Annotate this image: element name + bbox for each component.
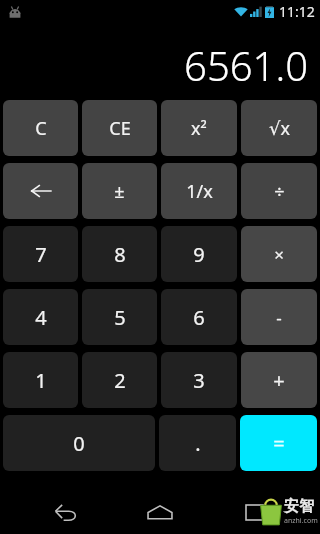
button[interactable]: 1/x bbox=[161, 163, 237, 219]
button[interactable]: 3 bbox=[161, 352, 237, 408]
button[interactable]: ÷ bbox=[241, 163, 317, 219]
staticText: - bbox=[276, 306, 282, 329]
staticText: = bbox=[273, 430, 285, 457]
button[interactable]: 7 bbox=[3, 226, 78, 282]
staticText: . bbox=[195, 430, 201, 457]
button[interactable]: 1 bbox=[3, 352, 78, 408]
staticText: × bbox=[274, 243, 284, 266]
button[interactable]: - bbox=[241, 289, 317, 345]
staticText: 8 bbox=[114, 241, 126, 268]
staticText: 安智 bbox=[284, 497, 314, 516]
staticText: anzhi.com bbox=[284, 516, 318, 526]
button[interactable]: 8 bbox=[82, 226, 157, 282]
staticText: CE bbox=[109, 116, 131, 141]
staticText: 9 bbox=[193, 241, 205, 268]
button[interactable]: 5 bbox=[82, 289, 157, 345]
button[interactable]: ± bbox=[82, 163, 157, 219]
button[interactable]: Backspace bbox=[3, 163, 78, 219]
button[interactable]: 9 bbox=[161, 226, 237, 282]
button[interactable]: 6 bbox=[161, 289, 237, 345]
button[interactable]: 2 bbox=[82, 352, 157, 408]
button[interactable]: 0 bbox=[3, 415, 155, 471]
button[interactable]: × bbox=[241, 226, 317, 282]
button[interactable]: CE bbox=[82, 100, 157, 156]
staticText: 6561.0 bbox=[184, 38, 308, 92]
button[interactable]: . bbox=[159, 415, 236, 471]
staticText: 2 bbox=[114, 367, 126, 394]
button[interactable]: x² bbox=[161, 100, 237, 156]
button[interactable]: 4 bbox=[3, 289, 78, 345]
button[interactable]: = bbox=[240, 415, 317, 471]
staticText: 3 bbox=[193, 367, 205, 394]
staticText: ± bbox=[114, 179, 125, 204]
button[interactable]: + bbox=[241, 352, 317, 408]
staticText: 7 bbox=[35, 241, 47, 268]
staticText: 4 bbox=[35, 304, 47, 331]
staticText: ÷ bbox=[274, 179, 285, 204]
staticText: x² bbox=[191, 116, 207, 141]
staticText: + bbox=[273, 367, 285, 394]
button[interactable]: C bbox=[3, 100, 78, 156]
staticText: 5 bbox=[114, 304, 126, 331]
button[interactable]: √x bbox=[241, 100, 317, 156]
staticText: √x bbox=[269, 116, 290, 141]
staticText: 11:12 bbox=[279, 2, 315, 21]
button[interactable]: Home bbox=[140, 492, 180, 532]
staticText: 1 bbox=[35, 367, 47, 394]
staticText: C bbox=[35, 116, 47, 141]
staticText: 0 bbox=[73, 430, 85, 457]
staticText: 1/x bbox=[186, 179, 213, 204]
staticText: 6 bbox=[193, 304, 205, 331]
button[interactable]: Back bbox=[48, 494, 84, 530]
button[interactable]: Recent apps bbox=[236, 494, 272, 530]
